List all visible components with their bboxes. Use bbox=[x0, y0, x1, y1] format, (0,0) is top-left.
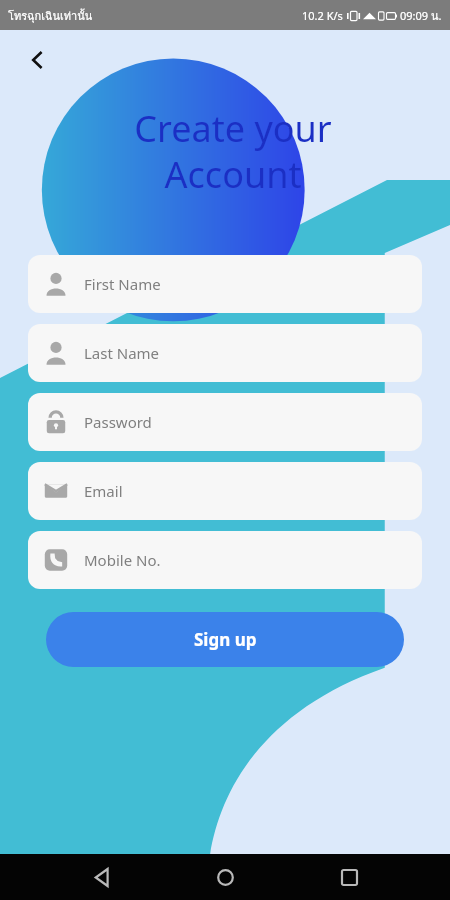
button[interactable]: Mobile No. bbox=[28, 531, 422, 589]
button[interactable]: Recent apps bbox=[327, 855, 371, 899]
staticText: Last Name bbox=[84, 343, 160, 363]
button[interactable]: Email bbox=[28, 462, 422, 520]
staticText: Password bbox=[84, 412, 152, 432]
staticText: Create your Account bbox=[134, 104, 332, 199]
staticText: 09:09 น. bbox=[400, 7, 442, 24]
button[interactable]: Home bbox=[203, 855, 247, 899]
button[interactable]: Back bbox=[18, 40, 58, 80]
button[interactable]: Last Name bbox=[28, 324, 422, 382]
button[interactable]: Back bbox=[80, 855, 124, 899]
staticText: Sign up bbox=[194, 628, 257, 651]
staticText: Email bbox=[84, 481, 123, 501]
staticText: โทรฉุกเฉินเท่านั้น bbox=[8, 7, 93, 24]
button[interactable]: Sign up bbox=[46, 612, 404, 667]
staticText: Mobile No. bbox=[84, 550, 161, 570]
staticText: 10.2 K/s bbox=[302, 8, 343, 23]
staticText: First Name bbox=[84, 274, 161, 294]
button[interactable]: First Name bbox=[28, 255, 422, 313]
button[interactable]: Password bbox=[28, 393, 422, 451]
